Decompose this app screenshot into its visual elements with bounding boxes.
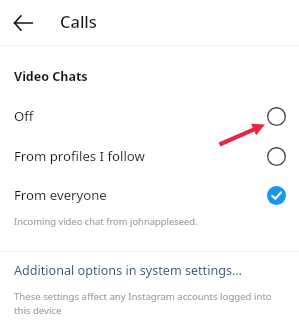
staticText: From everyone xyxy=(14,186,107,204)
staticText: From profiles I follow xyxy=(14,147,145,165)
button[interactable]: From everyone xyxy=(0,177,299,213)
staticText: Calls xyxy=(60,10,97,32)
staticText: These settings affect any Instagram acco… xyxy=(14,290,272,316)
button[interactable]: From profiles I follow xyxy=(0,138,299,174)
staticText: Off xyxy=(14,107,34,125)
button[interactable]: Off xyxy=(0,98,299,134)
staticText: Incoming video chat from johnappleseed. xyxy=(14,215,198,228)
button[interactable]: Additional options in system settings… xyxy=(0,261,299,280)
button[interactable]: Back xyxy=(5,5,41,41)
staticText: Video Chats xyxy=(14,68,88,85)
